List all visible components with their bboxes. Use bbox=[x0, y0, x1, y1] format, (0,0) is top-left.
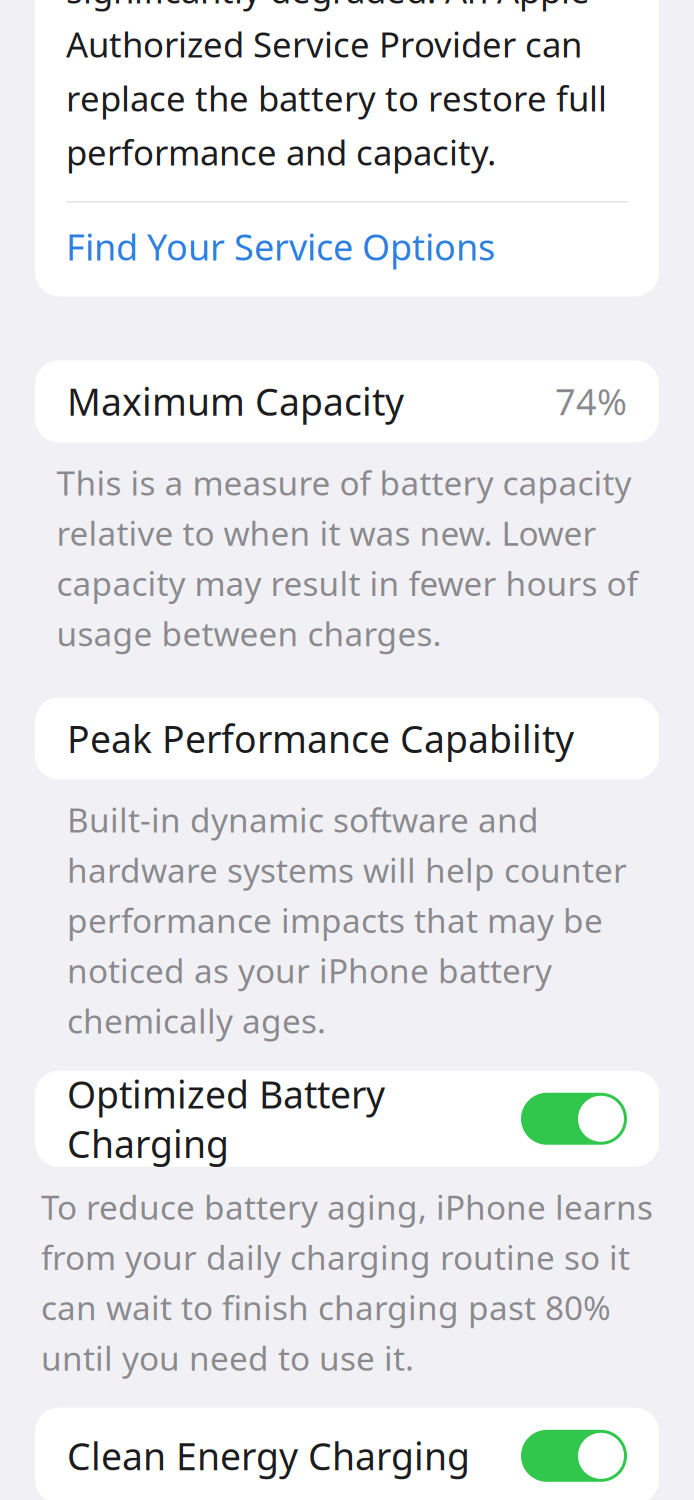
staticText: Maximum Capacity bbox=[67, 377, 404, 426]
staticText: Optimized Battery Charging bbox=[67, 1069, 385, 1168]
staticText: Built-in dynamic software and hardware s… bbox=[67, 797, 627, 1043]
staticText: This is a measure of battery capacity re… bbox=[56, 460, 637, 655]
staticText: 74% bbox=[555, 377, 627, 425]
staticText: Find Your Service Options bbox=[66, 223, 495, 270]
staticText: To reduce battery aging, iPhone learns f… bbox=[41, 1185, 653, 1380]
button[interactable]: Optimized Battery Charging bbox=[35, 1071, 659, 1167]
staticText: Clean Energy Charging bbox=[67, 1431, 470, 1481]
staticText: Your battery’s health is significantly d… bbox=[66, 0, 607, 175]
button[interactable]: Peak Performance Capability bbox=[35, 697, 659, 779]
button[interactable]: Find Your Service Options bbox=[66, 203, 628, 290]
staticText: Peak Performance Capability bbox=[67, 714, 574, 763]
button[interactable]: Clean Energy Charging bbox=[35, 1408, 659, 1500]
